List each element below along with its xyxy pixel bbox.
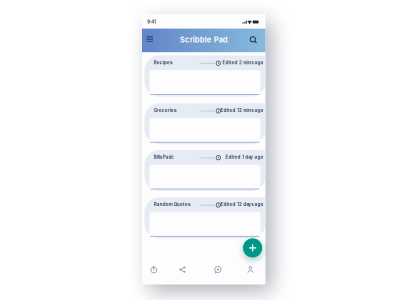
staticText: day — [245, 154, 253, 160]
staticText: ago — [254, 154, 263, 160]
button[interactable]: Comments — [212, 264, 223, 275]
button[interactable]: Bills Paid: — [144, 150, 265, 191]
staticText: Random Quotes: — [154, 202, 191, 207]
button[interactable]: Random Quotes: — [144, 197, 265, 238]
staticText: Edited — [226, 154, 241, 160]
button[interactable]: Share — [177, 264, 188, 275]
staticText: ago — [254, 202, 263, 207]
button[interactable]: Recipes: — [144, 55, 265, 96]
staticText: 12 — [237, 202, 242, 207]
button[interactable]: Profile — [245, 264, 256, 275]
staticText: ago — [254, 108, 263, 113]
staticText: Edited — [223, 60, 238, 65]
staticText: 12 — [237, 108, 242, 113]
button[interactable]: Menu — [145, 34, 155, 44]
staticText: Scribble Pad — [180, 35, 228, 44]
staticText: 2 — [239, 60, 242, 65]
staticText: Groceries: — [154, 108, 177, 113]
staticText: 1 — [242, 154, 244, 160]
button[interactable]: Export — [148, 264, 159, 275]
staticText: Bills Paid: — [154, 154, 174, 160]
button[interactable]: Groceries: — [144, 103, 265, 144]
staticText: mins — [243, 108, 253, 113]
button[interactable]: New note — [243, 238, 262, 257]
staticText: Edited — [221, 108, 236, 113]
staticText: mins — [243, 60, 253, 65]
staticText: days — [243, 202, 253, 207]
staticText: 9:41 — [147, 19, 156, 25]
staticText: Edited — [221, 202, 236, 207]
button[interactable]: Search — [248, 35, 258, 45]
staticText: ago — [254, 60, 263, 65]
staticText: Recipes: — [154, 60, 173, 65]
